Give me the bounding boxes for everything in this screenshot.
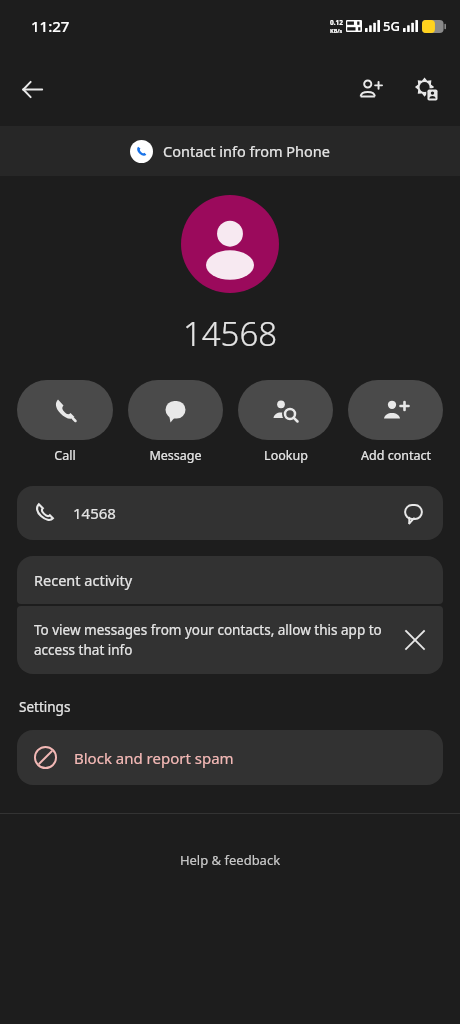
button[interactable]: 14568 xyxy=(17,486,443,540)
staticText: Settings xyxy=(19,698,71,716)
staticText: 14568 xyxy=(73,503,400,523)
staticText: 5G xyxy=(383,17,400,35)
staticText: 11:27 xyxy=(31,16,70,36)
staticText: To view messages from your contacts, all… xyxy=(34,621,389,659)
staticText: Block and report spam xyxy=(74,748,234,768)
button[interactable]: Settings xyxy=(402,65,450,113)
button[interactable]: Add contact xyxy=(348,380,443,464)
staticText: Message xyxy=(149,447,202,464)
button[interactable]: Dismiss xyxy=(395,620,435,660)
button[interactable]: Send message xyxy=(400,500,426,526)
button[interactable]: Message xyxy=(128,380,223,464)
staticText: 0.12 xyxy=(330,18,343,27)
button[interactable]: Contact info from Phone xyxy=(0,126,460,176)
button[interactable]: Add contact xyxy=(346,65,394,113)
staticText: Call xyxy=(54,447,76,464)
staticText: 14568 xyxy=(0,311,460,356)
button[interactable]: Call xyxy=(17,380,113,464)
button[interactable]: Lookup xyxy=(238,380,333,464)
staticText: Contact info from Phone xyxy=(163,141,330,161)
staticText: Lookup xyxy=(264,447,308,464)
staticText: KB/s xyxy=(330,27,343,34)
staticText: Recent activity xyxy=(34,570,133,590)
button[interactable]: Block and report spam xyxy=(17,730,443,785)
button[interactable]: Back xyxy=(8,65,56,113)
button[interactable]: Help & feedback xyxy=(0,847,460,873)
staticText: Add contact xyxy=(361,447,431,464)
